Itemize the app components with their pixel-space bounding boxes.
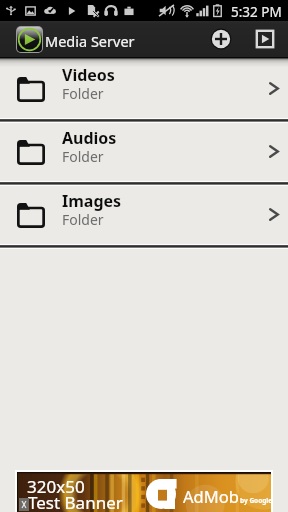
staticText: Folder: [62, 147, 104, 166]
button[interactable]: Close ad: [19, 498, 29, 511]
staticText: Folder: [62, 84, 104, 103]
button[interactable]: Play: [247, 21, 283, 57]
staticText: Audios: [62, 127, 117, 149]
button[interactable]: Videos: [0, 60, 288, 123]
staticText: Folder: [62, 210, 104, 229]
button[interactable]: Audios: [0, 123, 288, 186]
staticText: 320x50: [27, 475, 85, 498]
staticText: Videos: [62, 64, 115, 86]
button[interactable]: Open Videos: [259, 73, 288, 103]
button[interactable]: Open Audios: [259, 136, 288, 166]
button[interactable]: Images: [0, 186, 288, 249]
staticText: Images: [62, 190, 122, 212]
button[interactable]: Add: [203, 21, 238, 57]
staticText: AdMob: [183, 485, 239, 507]
staticText: 5:32 PM: [231, 3, 282, 21]
staticText: Media Server: [45, 31, 135, 51]
staticText: by Google: [240, 496, 271, 505]
staticText: Test Banner: [28, 491, 123, 512]
button[interactable]: Advertisement: [18, 473, 271, 512]
button[interactable]: Media Server: [17, 27, 42, 52]
button[interactable]: Open Images: [259, 199, 288, 229]
